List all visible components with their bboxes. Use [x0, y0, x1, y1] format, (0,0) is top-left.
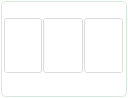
- button[interactable]: Card 1: [4, 18, 42, 73]
- button[interactable]: Card 3: [84, 18, 123, 73]
- button[interactable]: Card 2: [43, 18, 83, 73]
